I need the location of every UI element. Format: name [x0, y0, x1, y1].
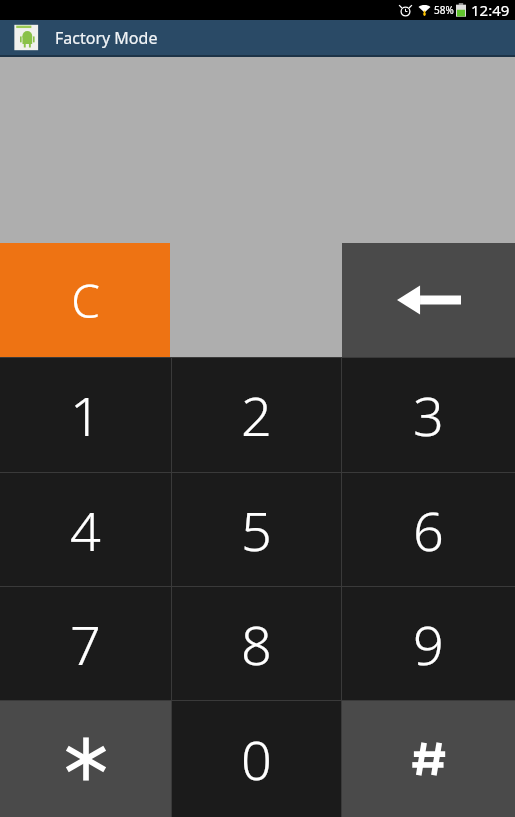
button[interactable]: 3 [342, 358, 515, 472]
staticText: 9 [413, 607, 444, 681]
staticText: 6 [413, 493, 444, 567]
staticText: 8 [241, 607, 272, 681]
staticText: 7 [70, 607, 101, 681]
staticText: C [71, 269, 100, 332]
staticText: 4 [70, 493, 101, 567]
staticText: Factory Mode [55, 27, 158, 49]
button[interactable]: 7 [0, 587, 171, 700]
staticText: 2 [241, 378, 272, 452]
button[interactable] [0, 701, 171, 817]
staticText: 12:49 [471, 0, 510, 20]
button[interactable] [342, 701, 515, 817]
button[interactable]: 4 [0, 473, 171, 586]
button[interactable]: 9 [342, 587, 515, 700]
button[interactable]: 8 [172, 587, 341, 700]
button[interactable]: 1 [0, 358, 171, 472]
button[interactable]: C [0, 243, 170, 357]
staticText: 58% [434, 3, 454, 17]
staticText: 5 [241, 493, 272, 567]
button[interactable]: 2 [172, 358, 341, 472]
button[interactable]: 0 [172, 701, 341, 817]
staticText: 3 [413, 378, 444, 452]
button[interactable]: 6 [342, 473, 515, 586]
button[interactable]: 5 [172, 473, 341, 586]
staticText: 1 [70, 378, 101, 452]
staticText: 0 [241, 722, 272, 796]
button[interactable]: Backspace [342, 243, 515, 357]
